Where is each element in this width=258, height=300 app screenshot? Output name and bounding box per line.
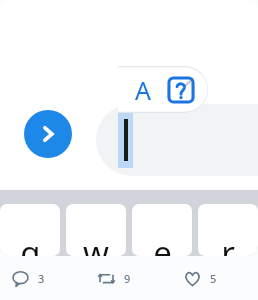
staticText: w — [83, 230, 109, 256]
button[interactable]: Like — [172, 256, 258, 300]
button[interactable]: Reply — [0, 256, 86, 300]
staticText: 9 — [124, 271, 131, 286]
staticText: 5 — [210, 271, 217, 286]
staticText: r — [221, 230, 235, 256]
button[interactable]: w — [66, 204, 126, 256]
button[interactable]: Retweet — [86, 256, 172, 300]
button[interactable]: e — [132, 204, 192, 256]
button[interactable]: q — [0, 204, 60, 256]
staticText: 3 — [38, 271, 45, 286]
button[interactable]: Text formatting — [126, 73, 160, 107]
button[interactable]: Stickers — [166, 74, 196, 106]
button[interactable]: Next — [24, 110, 72, 158]
staticText: q — [20, 230, 41, 256]
staticText: e — [153, 230, 172, 256]
button[interactable]: r — [198, 204, 258, 256]
button[interactable] — [96, 104, 258, 176]
staticText: A — [135, 73, 151, 107]
